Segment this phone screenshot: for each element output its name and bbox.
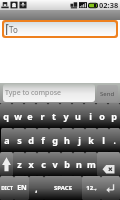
button[interactable]: p [108, 103, 120, 128]
button[interactable]: Type to compose [3, 84, 95, 102]
button[interactable]: SPACE [44, 176, 82, 200]
staticText: u [75, 110, 81, 122]
staticText: x [28, 158, 34, 170]
button[interactable]: c [37, 152, 49, 176]
button[interactable]: h [61, 128, 73, 152]
button[interactable]: s [13, 128, 25, 152]
button[interactable]: EN [14, 176, 29, 200]
staticText: SPACE [54, 184, 72, 192]
staticText: t [52, 110, 56, 122]
staticText: 12., [86, 184, 97, 192]
staticText: e [27, 110, 33, 122]
button[interactable]: z [13, 152, 25, 176]
button[interactable]: f [37, 128, 49, 152]
staticText: r [40, 110, 45, 122]
staticText: DICT [1, 185, 13, 192]
staticText: h [64, 134, 70, 146]
staticText: i [89, 110, 92, 122]
staticText: y [63, 110, 69, 122]
staticText: s [17, 134, 22, 146]
button[interactable]: Send [97, 85, 118, 102]
staticText: b [64, 158, 70, 170]
button[interactable]: u [72, 103, 84, 128]
staticText: a [4, 134, 10, 146]
button[interactable]: i [84, 103, 96, 128]
button[interactable]: x [25, 152, 37, 176]
staticText: Type to compose [5, 88, 61, 98]
button[interactable]: v [49, 152, 61, 176]
staticText: g [52, 134, 58, 146]
staticText: d [28, 134, 34, 146]
staticText: Send [100, 90, 115, 98]
staticText: 02:38 [99, 0, 119, 10]
button[interactable]: l [97, 128, 109, 152]
staticText: p [111, 110, 117, 122]
button[interactable]: n [73, 152, 85, 176]
button[interactable]: 12., [82, 176, 101, 200]
staticText: z [17, 158, 22, 170]
staticText: j [78, 134, 81, 146]
staticText: w [14, 110, 22, 122]
button[interactable]: o [96, 103, 108, 128]
button[interactable]: . [109, 128, 120, 152]
button[interactable]: y [60, 103, 72, 128]
button[interactable]: e [24, 103, 36, 128]
button[interactable]: w [12, 103, 24, 128]
button[interactable]: r [36, 103, 48, 128]
button[interactable]: Shift [0, 152, 13, 176]
staticText: To [9, 24, 18, 35]
staticText: l [102, 134, 105, 146]
button[interactable]: To [4, 22, 116, 36]
staticText: . [113, 135, 116, 146]
button[interactable]: Enter [101, 176, 120, 200]
staticText: m [87, 158, 96, 170]
button[interactable]: m [85, 152, 97, 176]
staticText: EN [17, 183, 27, 193]
staticText: c [41, 158, 46, 170]
button[interactable]: q [0, 103, 12, 128]
button[interactable]: d [25, 128, 37, 152]
button[interactable]: k [85, 128, 97, 152]
button[interactable]: j [73, 128, 85, 152]
button[interactable]: a [1, 128, 13, 152]
staticText: k [88, 134, 94, 146]
staticText: n [76, 158, 82, 170]
button[interactable]: g [49, 128, 61, 152]
button[interactable]: t [48, 103, 60, 128]
button[interactable]: Delete [97, 152, 120, 176]
button[interactable]: b [61, 152, 73, 176]
staticText: v [52, 158, 58, 170]
button[interactable]: DICT [0, 176, 14, 200]
staticText: , [35, 183, 38, 194]
staticText: f [41, 134, 45, 146]
staticText: o [99, 110, 105, 122]
staticText: q [3, 110, 9, 122]
button[interactable]: , [29, 176, 44, 200]
